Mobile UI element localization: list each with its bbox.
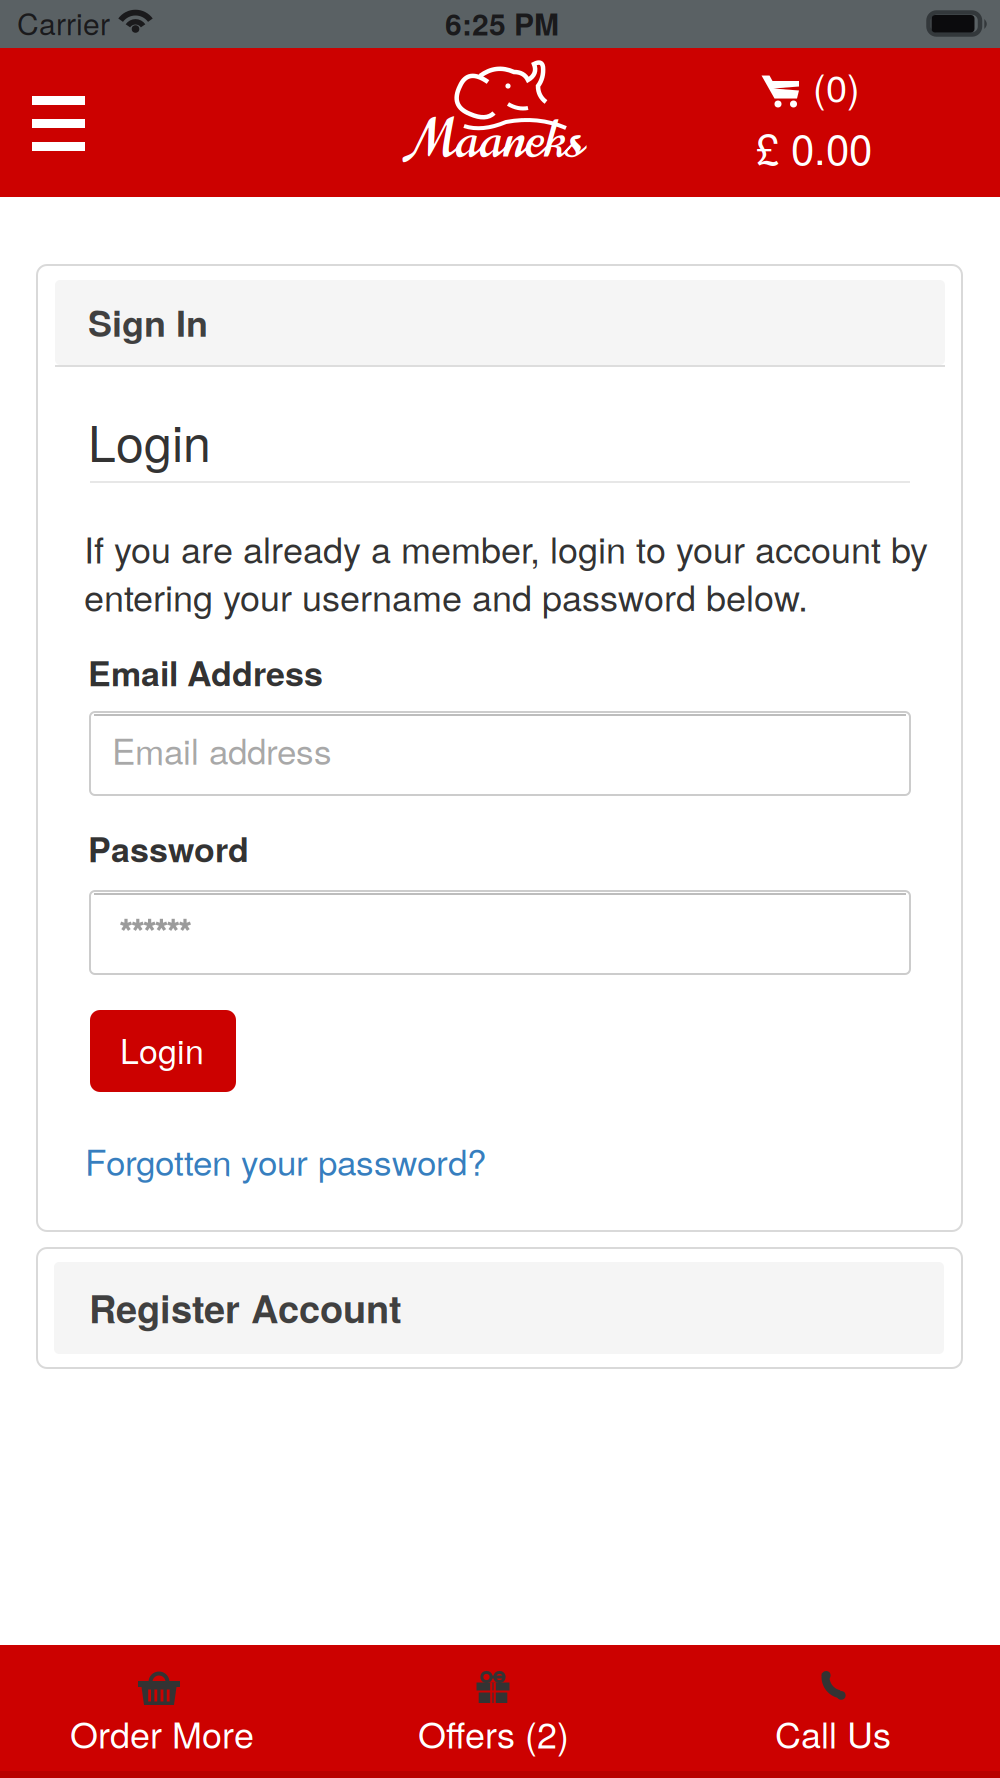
button[interactable]: Offers (2) [333, 1645, 666, 1778]
button[interactable]: Sign In [55, 280, 945, 367]
staticText: Forgotten your password? [85, 1136, 486, 1186]
staticText: Register Account [89, 1280, 402, 1335]
staticText: Email address [112, 725, 332, 775]
staticText: Sign In [88, 296, 208, 348]
staticText: Login [120, 1025, 204, 1074]
staticText: £ 0.00 [756, 117, 872, 177]
button[interactable]: Register Account [37, 1248, 962, 1368]
staticText: Login [88, 404, 211, 476]
staticText: Maaneks [413, 103, 583, 176]
button[interactable]: Login [90, 1010, 236, 1092]
staticText: Carrier [17, 1, 110, 44]
staticText: Email Address [88, 648, 323, 697]
staticText: If you are already a member, login to yo… [84, 522, 928, 574]
staticText: Call Us [775, 1707, 891, 1759]
button[interactable]: Order More [0, 1645, 333, 1778]
staticText: entering your username and password belo… [84, 570, 808, 622]
staticText: Offers (2) [418, 1707, 569, 1759]
button[interactable]: Email address [90, 712, 910, 795]
staticText: Password [88, 824, 249, 873]
button[interactable]: Password [90, 891, 910, 974]
button[interactable]: Forgotten your password? [85, 1136, 486, 1186]
staticText: 6:25 PM [445, 2, 559, 45]
button[interactable]: Call Us [667, 1645, 1000, 1778]
staticText: (0) [813, 59, 860, 113]
button[interactable]: Menu [32, 96, 85, 151]
staticText: Order More [70, 1707, 254, 1759]
button[interactable]: Basket [756, 50, 881, 190]
